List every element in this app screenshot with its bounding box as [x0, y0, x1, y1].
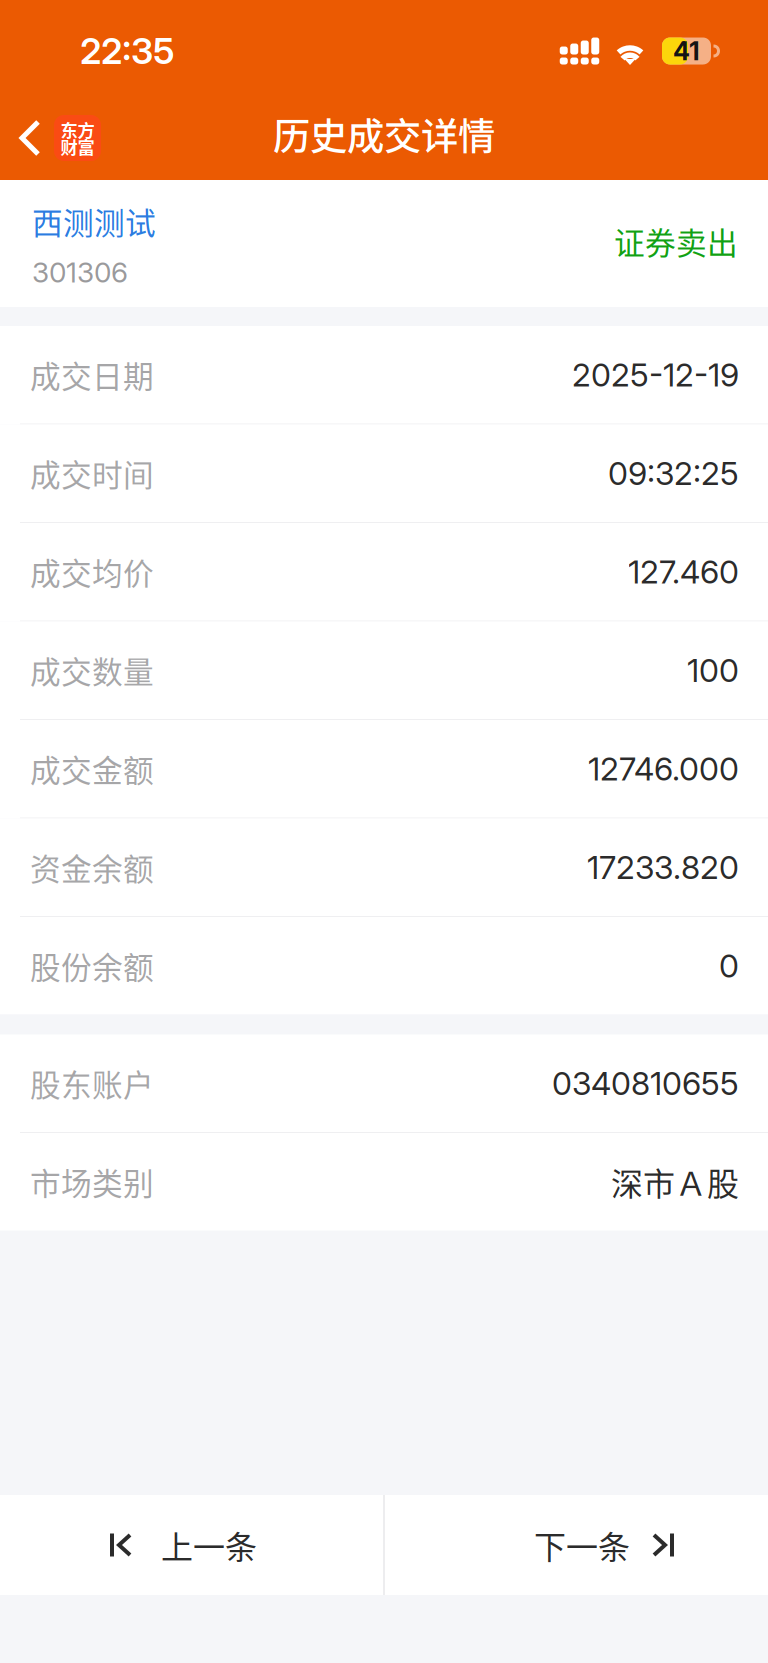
- staticText: 301306: [32, 255, 128, 289]
- button[interactable]: 西测测试: [0, 180, 768, 307]
- staticText: 证券卖出: [614, 219, 738, 263]
- staticText: 成交金额: [30, 746, 154, 791]
- staticText: 成交均价: [30, 549, 154, 594]
- staticText: 上一条: [161, 1522, 257, 1568]
- staticText: 12746.000: [588, 749, 739, 788]
- staticText: 2025-12-19: [572, 355, 739, 394]
- staticText: 下一条: [534, 1522, 630, 1568]
- staticText: 22:35: [80, 29, 175, 73]
- staticText: 西测测试: [32, 199, 156, 243]
- staticText: 股东账户: [30, 1061, 154, 1105]
- button[interactable]: Back: [0, 96, 117, 180]
- staticText: 100: [687, 651, 739, 690]
- button[interactable]: 下一条: [385, 1495, 768, 1595]
- staticText: 深市Ａ股: [611, 1159, 739, 1205]
- button[interactable]: 上一条: [0, 1495, 383, 1595]
- staticText: 历史成交详情: [273, 107, 495, 161]
- staticText: 17233.820: [587, 848, 739, 887]
- staticText: 股份余额: [30, 943, 154, 988]
- staticText: 成交数量: [30, 648, 154, 692]
- staticText: 09:32:25: [608, 454, 739, 493]
- staticText: 0340810655: [552, 1064, 739, 1103]
- staticText: 财富: [60, 134, 94, 159]
- staticText: 东方: [60, 117, 94, 142]
- staticText: 成交时间: [30, 451, 154, 495]
- staticText: 成交日期: [30, 352, 154, 397]
- staticText: 0: [719, 946, 739, 985]
- staticText: 127.460: [628, 552, 739, 591]
- staticText: 市场类别: [30, 1159, 154, 1204]
- staticText: 资金余额: [30, 845, 154, 889]
- staticText: 41: [673, 36, 700, 66]
